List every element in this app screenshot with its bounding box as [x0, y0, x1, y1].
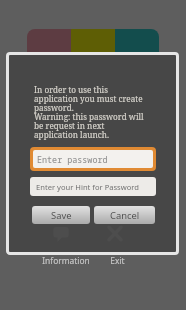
- button[interactable]: [115, 29, 159, 54]
- button[interactable]: [27, 29, 71, 54]
- staticText: Information: [40, 255, 92, 266]
- button[interactable]: Cancel: [94, 206, 155, 224]
- staticText: In order to use this application you mus…: [34, 84, 146, 141]
- staticText: Exit: [99, 255, 136, 266]
- staticText: Enter your Hint for Password: [36, 182, 139, 192]
- staticText: Cancel: [110, 209, 140, 222]
- button[interactable]: Enter your Hint for Password: [30, 177, 156, 196]
- staticText: Enter password: [37, 154, 108, 165]
- button[interactable]: [71, 29, 115, 54]
- button[interactable]: Exit: [99, 224, 136, 266]
- staticText: Save: [51, 209, 72, 222]
- button[interactable]: Information: [40, 224, 92, 266]
- button[interactable]: Enter password: [33, 150, 153, 168]
- button[interactable]: Save: [32, 206, 90, 224]
